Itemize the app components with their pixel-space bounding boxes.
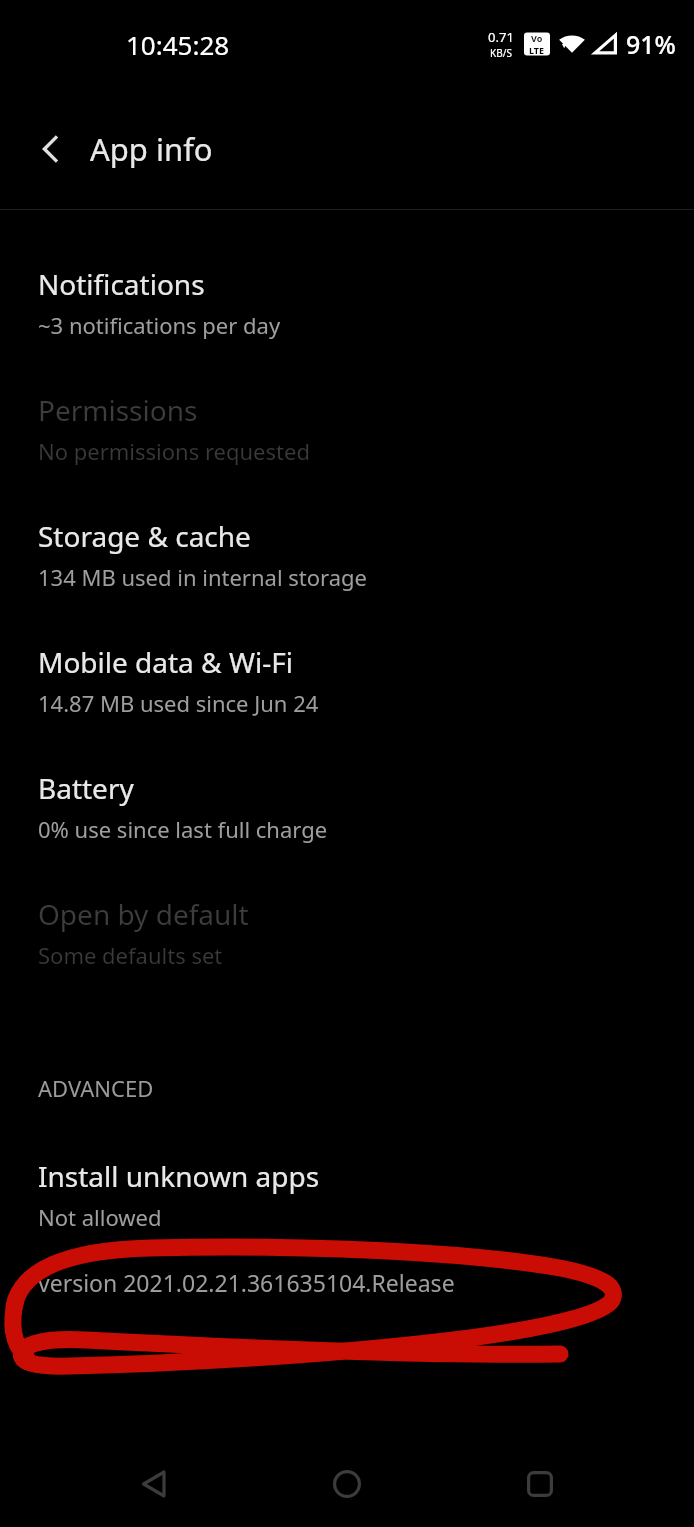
staticText: LTE bbox=[529, 44, 545, 56]
staticText: Not allowed bbox=[38, 1202, 162, 1232]
staticText: 0.71 bbox=[488, 28, 514, 46]
staticText: 0% use since last full charge bbox=[38, 814, 328, 844]
staticText: 134 MB used in internal storage bbox=[38, 562, 367, 592]
staticText: Permissions bbox=[38, 391, 198, 429]
staticText: No permissions requested bbox=[38, 436, 310, 466]
staticText: Storage & cache bbox=[38, 517, 251, 555]
staticText: App info bbox=[90, 128, 213, 170]
button[interactable]: Home bbox=[309, 1446, 385, 1522]
button[interactable]: Battery bbox=[0, 743, 694, 869]
staticText: Open by default bbox=[38, 895, 249, 933]
staticText: KB/S bbox=[490, 46, 512, 60]
button[interactable]: Mobile data & Wi-Fi bbox=[0, 617, 694, 743]
button[interactable]: Notifications bbox=[0, 239, 694, 365]
staticText: 10:45:28 bbox=[126, 27, 230, 62]
button[interactable]: Storage & cache bbox=[0, 491, 694, 617]
staticText: 14.87 MB used since Jun 24 bbox=[38, 688, 319, 718]
staticText: Vo bbox=[531, 32, 543, 44]
button[interactable]: Back bbox=[20, 118, 82, 180]
staticText: version 2021.02.21.361635104.Release bbox=[38, 1267, 455, 1298]
button[interactable]: Back bbox=[117, 1446, 193, 1522]
staticText: Battery bbox=[38, 769, 134, 807]
staticText: Mobile data & Wi-Fi bbox=[38, 643, 293, 681]
staticText: ~3 notifications per day bbox=[38, 310, 281, 340]
button[interactable]: Recent apps bbox=[502, 1446, 578, 1522]
button[interactable]: Install unknown apps bbox=[0, 1131, 694, 1257]
button[interactable]: Open by default bbox=[0, 869, 694, 995]
staticText: Notifications bbox=[38, 265, 205, 303]
staticText: 91% bbox=[626, 27, 676, 61]
staticText: Some defaults set bbox=[38, 940, 223, 970]
staticText: Install unknown apps bbox=[38, 1157, 320, 1195]
button[interactable]: Permissions bbox=[0, 365, 694, 491]
staticText: ADVANCED bbox=[38, 1073, 154, 1103]
